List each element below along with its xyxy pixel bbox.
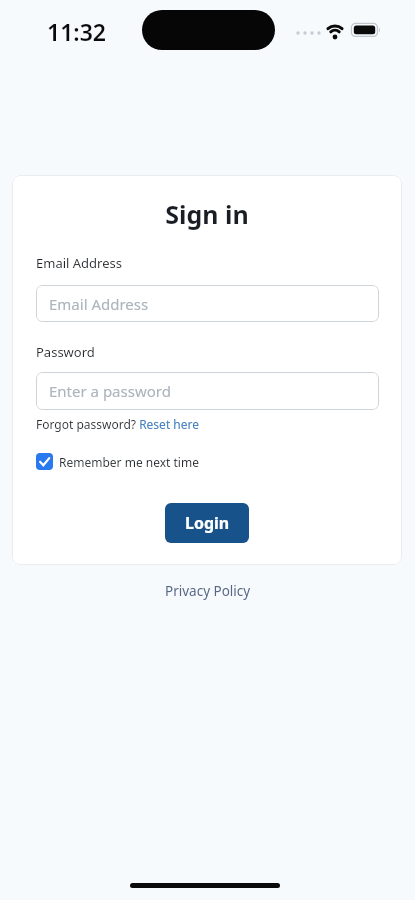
button[interactable]: Enter a password [36, 372, 379, 410]
button[interactable]: Forgot password? Reset here [36, 416, 200, 432]
button[interactable]: Login [165, 503, 249, 543]
staticText: Password [36, 343, 95, 361]
staticText: Login [185, 512, 230, 534]
button[interactable]: Email Address [36, 285, 379, 322]
staticText: Enter a password [49, 381, 171, 401]
button[interactable]: Privacy Policy [165, 582, 251, 600]
staticText: Sign in [12, 197, 402, 231]
staticText: Email Address [49, 294, 149, 314]
staticText: 11:32 [47, 16, 106, 47]
button[interactable]: Remember me next time [36, 453, 199, 470]
staticText: Email Address [36, 254, 122, 272]
staticText: Remember me next time [59, 454, 199, 470]
